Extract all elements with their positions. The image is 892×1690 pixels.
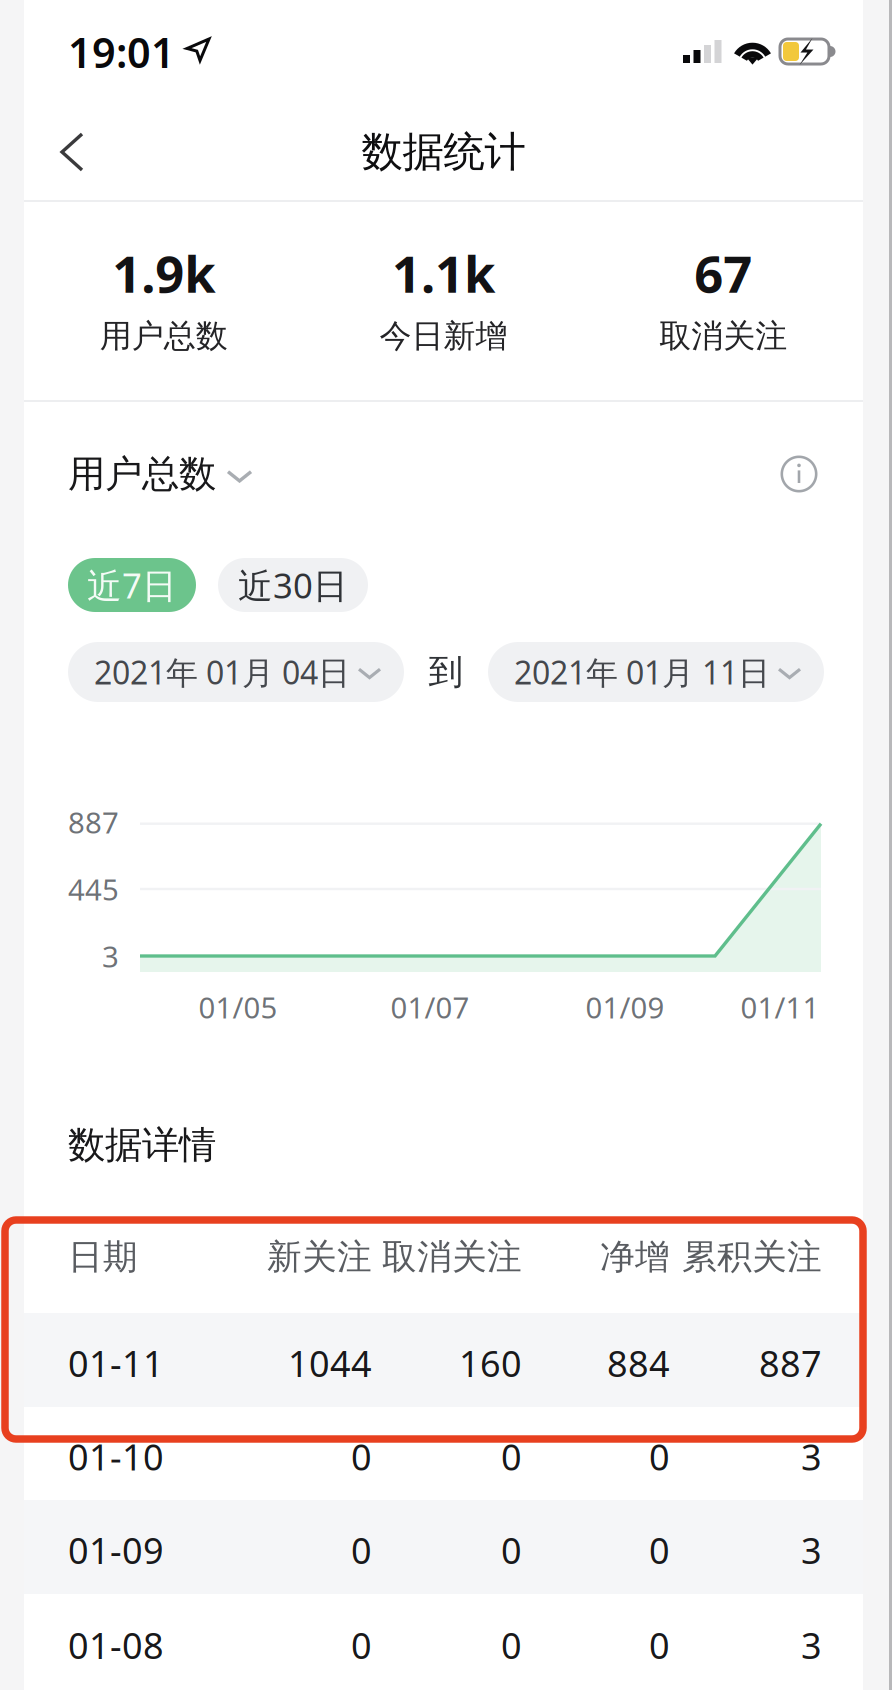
button[interactable]: 2021年 01月 04日 [68,642,404,702]
staticText: 数据详情 [68,1122,216,1168]
staticText: 3 [102,936,119,975]
staticText: 取消关注 [382,1236,522,1278]
staticText: 0 [649,1621,670,1669]
staticText: 1044 [288,1339,372,1387]
button[interactable]: 用户总数 [68,451,253,497]
staticText: 新关注 [267,1236,372,1278]
staticText: 67 [694,239,752,307]
button[interactable]: 近30日 [218,558,368,612]
staticText: 01/07 [390,987,469,1026]
staticText: 今日新增 [379,316,507,356]
staticText: 19:01 [68,25,175,79]
staticText: 用户总数 [68,451,216,497]
staticText: 到 [428,651,463,693]
staticText: 01-08 [68,1621,164,1669]
staticText: 887 [68,802,119,841]
staticText: 01/05 [198,987,277,1026]
staticText: 近7日 [87,562,177,608]
staticText: 0 [351,1433,372,1480]
staticText: 01-11 [68,1339,164,1387]
staticText: 用户总数 [100,316,228,356]
staticText: 887 [759,1339,822,1387]
staticText: 0 [351,1621,372,1669]
staticText: 近30日 [238,562,348,608]
staticText: 1.1k [392,239,495,307]
staticText: 0 [649,1526,670,1574]
staticText: 0 [501,1621,522,1669]
staticText: 0 [351,1526,372,1574]
staticText: 3 [801,1526,822,1574]
staticText: 取消关注 [659,316,787,356]
button[interactable]: Back [26,106,118,198]
staticText: 1.9k [112,239,215,307]
staticText: 2021年 01月 04日 [94,651,350,693]
staticText: 0 [501,1526,522,1574]
staticText: 0 [649,1433,670,1480]
button[interactable]: Info [780,455,818,493]
staticText: 累积关注 [682,1236,822,1278]
staticText: 01-09 [68,1526,164,1574]
staticText: 净增 [600,1236,670,1278]
staticText: 0 [501,1433,522,1480]
staticText: 3 [801,1621,822,1669]
staticText: 445 [68,869,119,908]
staticText: 3 [801,1433,822,1480]
staticText: 160 [459,1339,522,1387]
staticText: 01-10 [68,1433,164,1480]
staticText: 日期 [68,1236,138,1278]
button[interactable]: 2021年 01月 11日 [488,642,824,702]
staticText: 01/09 [585,987,664,1026]
button[interactable]: 近7日 [68,558,196,612]
staticText: 884 [607,1339,670,1387]
staticText: 数据统计 [361,127,525,177]
staticText: 01/11 [740,987,819,1026]
staticText: 2021年 01月 11日 [514,651,770,693]
